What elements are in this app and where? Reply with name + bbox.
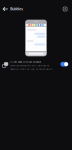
staticText: Allow apps to show bubbles	[10, 60, 41, 63]
button[interactable]: More options	[63, 0, 72, 18]
button[interactable]: Allow apps to show bubbles	[0, 60, 72, 71]
staticText: floating icons on top of other apps.	[10, 67, 53, 71]
button[interactable]: Back	[0, 0, 10, 18]
staticText: Some conversations will appear as	[10, 64, 49, 67]
staticText: Bubbles	[10, 7, 23, 11]
